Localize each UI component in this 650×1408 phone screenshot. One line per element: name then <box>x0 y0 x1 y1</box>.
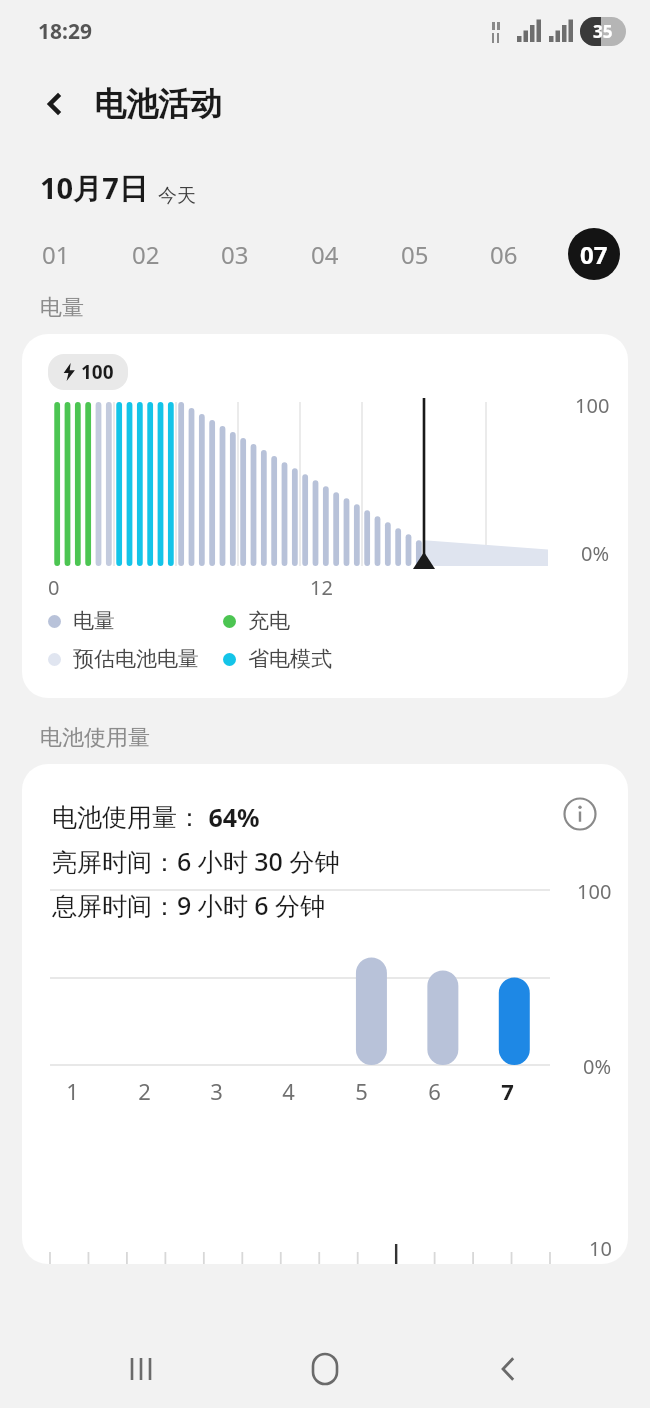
button[interactable]: Home <box>283 1330 367 1408</box>
button[interactable]: 05 <box>389 228 441 280</box>
button[interactable]: 01 <box>30 228 82 280</box>
staticText: 100 <box>577 878 612 905</box>
staticText: 息屏时间：9 小时 6 分钟 <box>52 888 326 922</box>
button[interactable]: 07 <box>568 228 620 280</box>
staticText: 02 <box>132 238 160 271</box>
staticText: 电池使用量： <box>52 802 202 833</box>
button[interactable]: Info <box>558 792 602 836</box>
button[interactable]: 03 <box>209 228 261 280</box>
staticText: 04 <box>311 238 339 271</box>
staticText: 3 <box>210 1076 223 1106</box>
button[interactable]: 06 <box>478 228 530 280</box>
staticText: 10月7日 <box>40 168 148 208</box>
staticText: 电池活动 <box>94 84 222 124</box>
staticText: 6 <box>428 1076 441 1106</box>
staticText: 100 <box>81 359 114 385</box>
button[interactable]: Back <box>467 1330 551 1408</box>
staticText: 充电 <box>248 608 290 634</box>
staticText: 07 <box>580 238 608 271</box>
staticText: 电量 <box>73 608 115 634</box>
button[interactable]: 04 <box>299 228 351 280</box>
staticText: 35 <box>593 20 613 43</box>
staticText: 18:29 <box>38 17 92 46</box>
staticText: 省电模式 <box>248 646 332 672</box>
staticText: 7 <box>501 1076 514 1106</box>
staticText: 64% <box>202 800 260 834</box>
staticText: 10 <box>589 1235 612 1262</box>
button[interactable]: Recents <box>100 1330 184 1408</box>
staticText: 电池使用量 <box>40 724 150 752</box>
staticText: 2 <box>138 1076 151 1106</box>
staticText: 100 <box>575 392 610 419</box>
staticText: 5 <box>355 1076 368 1106</box>
staticText: 06 <box>490 238 518 271</box>
staticText: 4 <box>282 1076 295 1106</box>
button[interactable]: Back <box>34 82 78 126</box>
staticText: 亮屏时间：6 小时 30 分钟 <box>52 844 340 878</box>
staticText: 0% <box>583 1053 612 1080</box>
button[interactable]: 100 <box>22 334 628 698</box>
staticText: 预估电池电量 <box>73 646 199 672</box>
staticText: 05 <box>401 238 429 271</box>
staticText: 电量 <box>40 294 84 322</box>
staticText: 03 <box>221 238 249 271</box>
staticText: 1 <box>66 1076 79 1106</box>
button[interactable]: 电池使用量： <box>22 764 628 1264</box>
staticText: 0% <box>581 540 610 567</box>
staticText: 0 <box>48 574 60 601</box>
button[interactable]: 02 <box>120 228 172 280</box>
staticText: 01 <box>42 238 70 271</box>
button[interactable]: Back <box>0 62 650 146</box>
staticText: 12 <box>310 574 333 601</box>
staticText: 今天 <box>158 184 196 208</box>
